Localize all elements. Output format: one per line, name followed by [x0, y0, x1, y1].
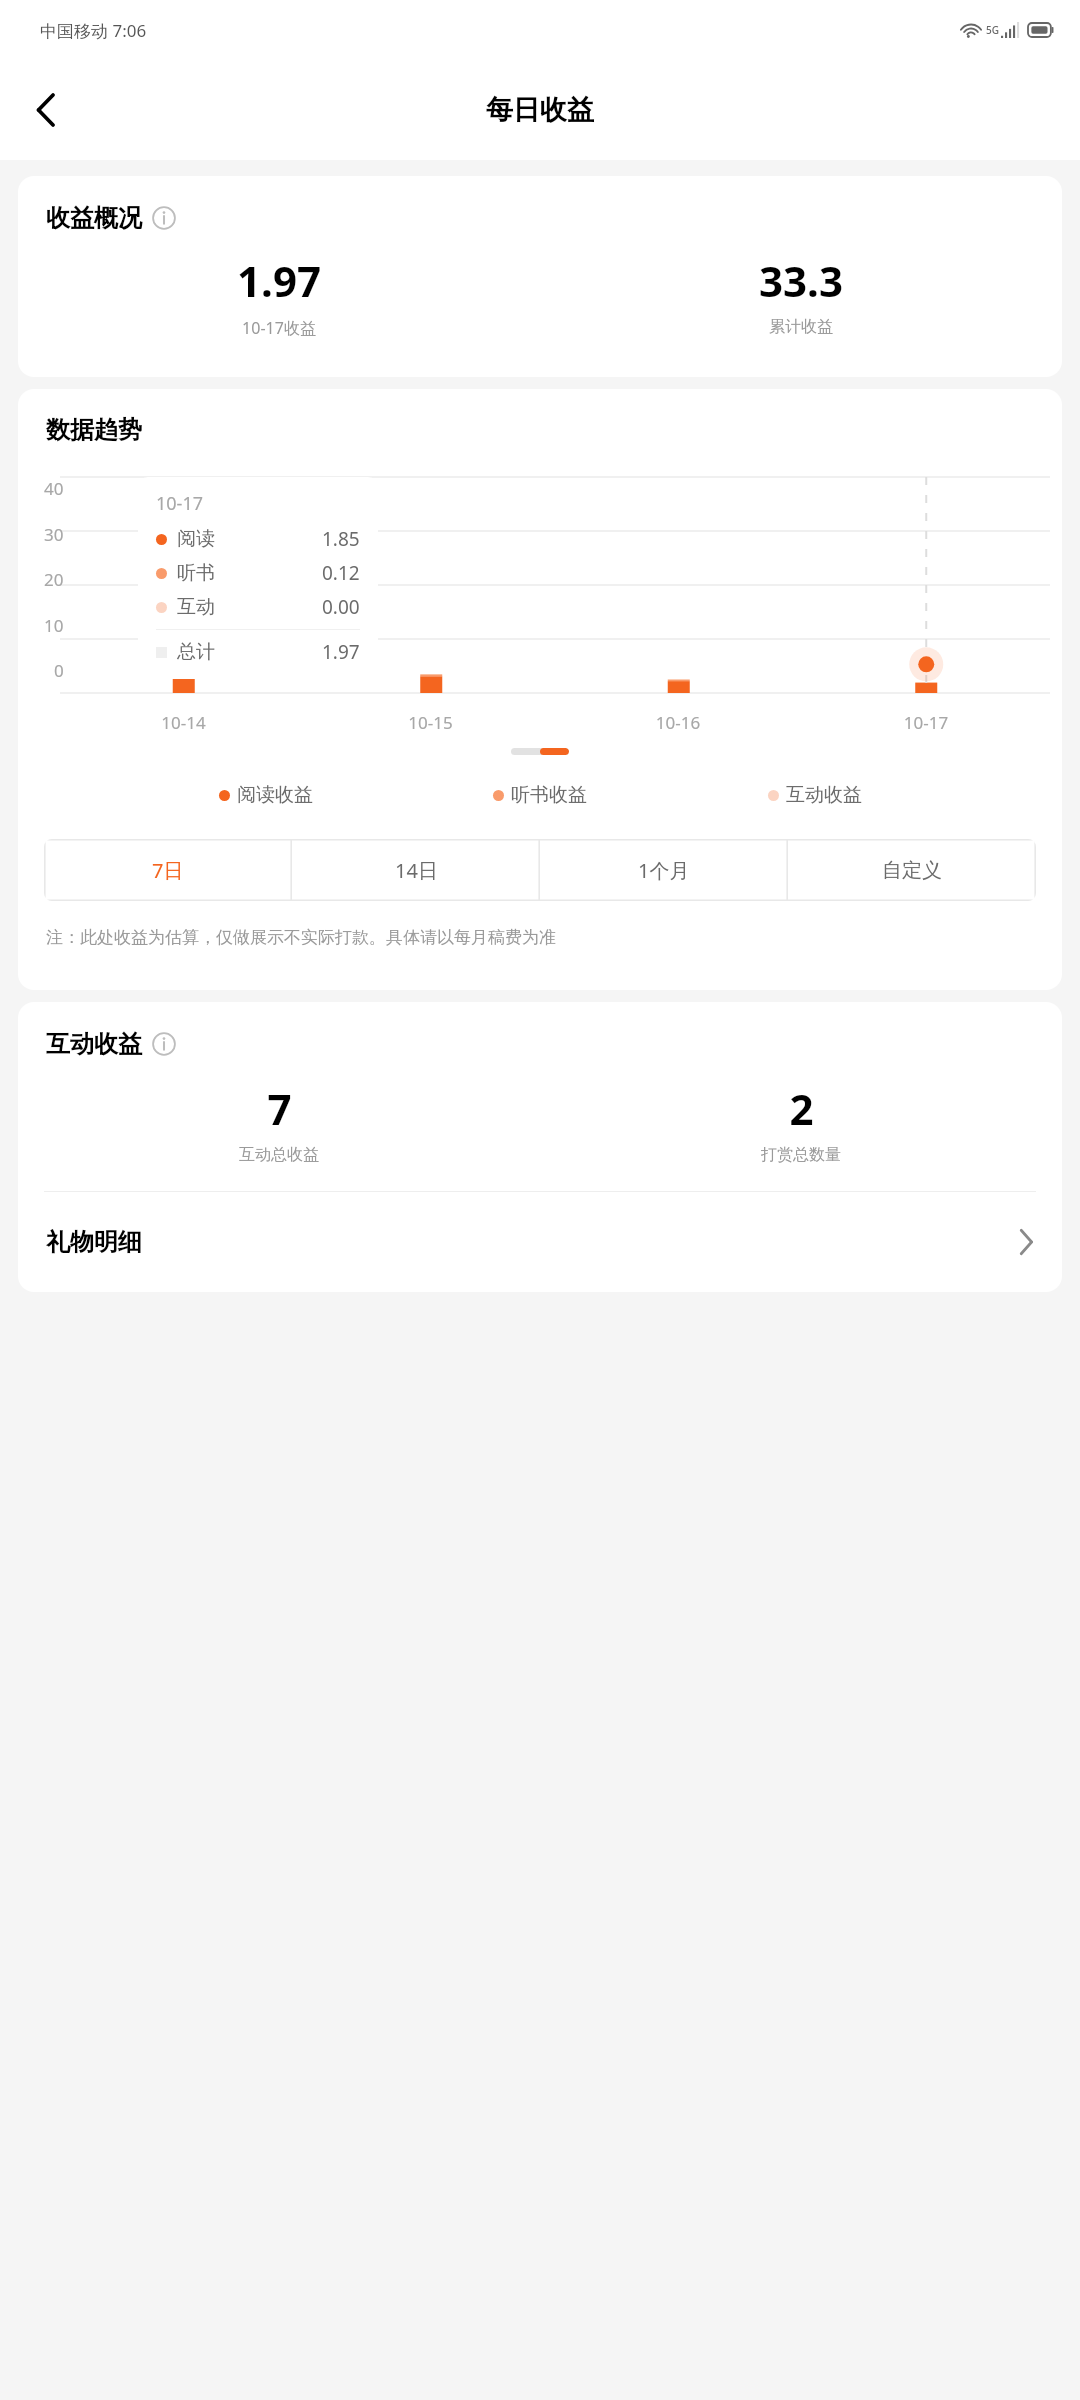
staticText: 自定义 — [882, 858, 942, 883]
staticText: 数据趋势 — [46, 415, 142, 445]
staticText: 10-17 — [156, 491, 203, 516]
staticText: 互动总收益 — [239, 1145, 319, 1165]
staticText: 1.97 — [322, 639, 360, 665]
staticText: 30 — [44, 523, 64, 546]
staticText: 20 — [44, 568, 64, 591]
staticText: 累计收益 — [769, 317, 833, 337]
staticText: 总计 — [177, 640, 215, 664]
staticText: 40 — [44, 477, 64, 500]
button[interactable]: 礼物明细 — [18, 1192, 1062, 1292]
staticText: 0.00 — [322, 594, 360, 620]
staticText: 互动 — [177, 595, 215, 619]
staticText: 14日 — [395, 857, 438, 884]
staticText: 0.12 — [322, 560, 360, 586]
staticText: 10-17收益 — [242, 317, 316, 339]
staticText: 10-15 — [307, 711, 554, 734]
staticText: 0 — [54, 659, 64, 682]
staticText: 10 — [44, 614, 64, 637]
button[interactable]: 1个月 — [540, 839, 788, 901]
staticText: 33.3 — [759, 252, 843, 309]
staticText: 听书收益 — [511, 783, 587, 807]
staticText: 每日收益 — [486, 93, 594, 127]
button[interactable]: 14日 — [292, 839, 540, 901]
staticText: 10-16 — [554, 711, 802, 734]
staticText: 7日 — [152, 857, 184, 884]
staticText: 打赏总数量 — [761, 1145, 841, 1165]
staticText: 礼物明细 — [46, 1227, 142, 1257]
button[interactable]: 7日 — [44, 839, 292, 901]
button[interactable]: 自定义 — [788, 839, 1036, 901]
staticText: 2 — [789, 1080, 814, 1137]
button[interactable]: Info — [148, 202, 180, 234]
staticText: 互动收益 — [46, 1029, 142, 1059]
staticText: 听书 — [177, 561, 215, 585]
staticText: 阅读收益 — [237, 783, 313, 807]
staticText: 5G — [986, 23, 999, 37]
staticText: 1.97 — [237, 252, 321, 309]
staticText: 互动收益 — [786, 783, 862, 807]
staticText: 中国移动 7:06 — [40, 19, 147, 42]
button[interactable]: Back — [18, 82, 74, 138]
staticText: 1.85 — [322, 526, 360, 552]
staticText: 收益概况 — [46, 203, 142, 233]
button[interactable]: Info — [148, 1028, 180, 1060]
staticText: 10-14 — [60, 711, 307, 734]
staticText: 注：此处收益为估算，仅做展示不实际打款。具体请以每月稿费为准 — [46, 927, 556, 948]
staticText: 1个月 — [638, 857, 690, 884]
staticText: 7 — [267, 1080, 292, 1137]
staticText: 10-17 — [802, 711, 1050, 734]
staticText: 阅读 — [177, 527, 215, 551]
